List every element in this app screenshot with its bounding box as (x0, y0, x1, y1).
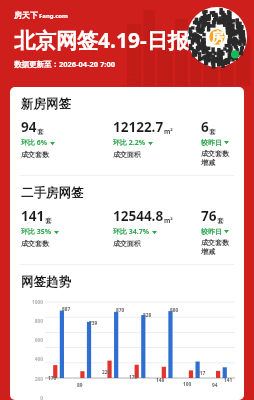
staticText: 套 (37, 128, 44, 136)
staticText: 170 (48, 375, 57, 382)
staticText: 房天下 (14, 10, 38, 20)
staticText: 100 (183, 381, 192, 388)
staticText: 141 (224, 377, 233, 384)
staticText: 较昨日 (201, 138, 222, 147)
staticText: 成交套数增减 (201, 149, 235, 167)
staticText: 成交套数 (21, 150, 49, 159)
staticText: 217 (197, 370, 206, 377)
button[interactable]: 网签趋势 (10, 265, 244, 400)
staticText: m² (164, 127, 173, 136)
staticText: 828 (143, 312, 152, 319)
staticText: 400 (21, 356, 43, 363)
staticText: 成交套数增减 (201, 238, 235, 256)
staticText: 6 (201, 118, 209, 136)
staticText: 887 (62, 306, 71, 313)
staticText: 北京网签4.19-日报 (14, 26, 189, 55)
staticText: 229 (102, 369, 111, 376)
staticText: 175 (129, 374, 138, 381)
staticText: 环比 34.7% (113, 227, 150, 237)
staticText: 套 (217, 217, 224, 225)
staticText: 房 (211, 29, 224, 45)
button[interactable]: 新房网签 (10, 87, 244, 175)
staticText: 600 (21, 337, 43, 344)
staticText: 148 (156, 377, 165, 384)
staticText: 套 (45, 217, 52, 225)
staticText: 0 (21, 395, 43, 400)
staticText: m² (164, 216, 173, 225)
staticText: 成交面积 (113, 239, 141, 248)
staticText: 成交套数 (21, 239, 49, 248)
staticText: 网签趋势 (21, 274, 71, 290)
staticText: 1000 (21, 299, 43, 306)
staticText: 141 (21, 207, 45, 225)
staticText: 新房网签 (21, 96, 71, 112)
staticText: 94 (21, 118, 37, 136)
staticText: 76 (201, 207, 217, 225)
staticText: 环比 6% (21, 138, 48, 148)
staticText: 成交面积 (113, 150, 141, 159)
staticText: 739 (89, 320, 98, 327)
staticText: 数据更新至：2026-04-20 7:00 (14, 59, 116, 69)
staticText: 880 (170, 307, 179, 314)
staticText: 环比 2.2% (113, 138, 146, 148)
staticText: 94 (212, 382, 218, 389)
staticText: 870 (116, 307, 125, 314)
staticText: 较昨日 (201, 227, 222, 236)
staticText: 200 (21, 376, 43, 383)
button[interactable]: 二手房网签 (10, 176, 244, 264)
staticText: 89 (77, 382, 83, 389)
staticText: 套 (209, 128, 216, 136)
staticText: 二手房网签 (21, 185, 84, 201)
staticText: 环比 35% (21, 227, 52, 237)
staticText: 12122.7 (113, 118, 164, 136)
staticText: 800 (21, 318, 43, 325)
staticText: 12544.8 (113, 207, 164, 225)
staticText: Fang.com (39, 12, 68, 20)
button[interactable]: 扫码二维码 (187, 7, 247, 67)
